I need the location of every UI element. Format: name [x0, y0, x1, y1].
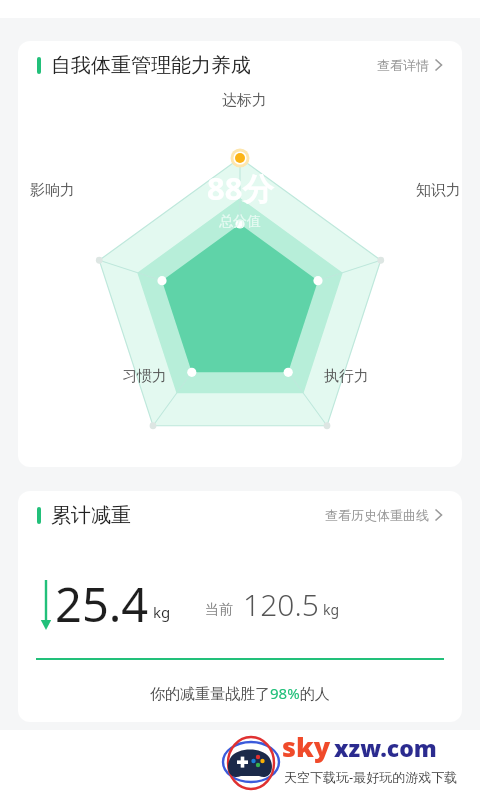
staticText: 25.4 [55, 572, 149, 636]
staticText: 总分值 [219, 213, 261, 231]
button[interactable]: 查看历史体重曲线 [323, 503, 444, 527]
staticText: kg [153, 602, 171, 622]
staticText: 执行力 [324, 367, 369, 386]
staticText: 累计减重 [51, 503, 131, 528]
staticText: 知识力 [416, 181, 461, 200]
staticText: 查看历史体重曲线 [325, 507, 429, 523]
staticText: kg [323, 600, 340, 619]
staticText: 达标力 [222, 91, 267, 110]
staticText: 自我体重管理能力养成 [51, 53, 251, 78]
staticText: 你的减重量战胜了98%的人 [150, 683, 330, 703]
staticText: sky [282, 728, 331, 765]
staticText: xzw.com [334, 732, 437, 763]
staticText: 88分 [207, 167, 274, 209]
staticText: 习惯力 [122, 367, 167, 386]
button[interactable]: 查看详情 [375, 53, 444, 77]
staticText: 天空下载玩-最好玩的游戏下载 [284, 768, 458, 786]
staticText: 当前 [205, 601, 233, 619]
staticText: 120.5 [243, 584, 319, 625]
staticText: 查看详情 [377, 57, 429, 73]
staticText: 影响力 [30, 181, 75, 200]
